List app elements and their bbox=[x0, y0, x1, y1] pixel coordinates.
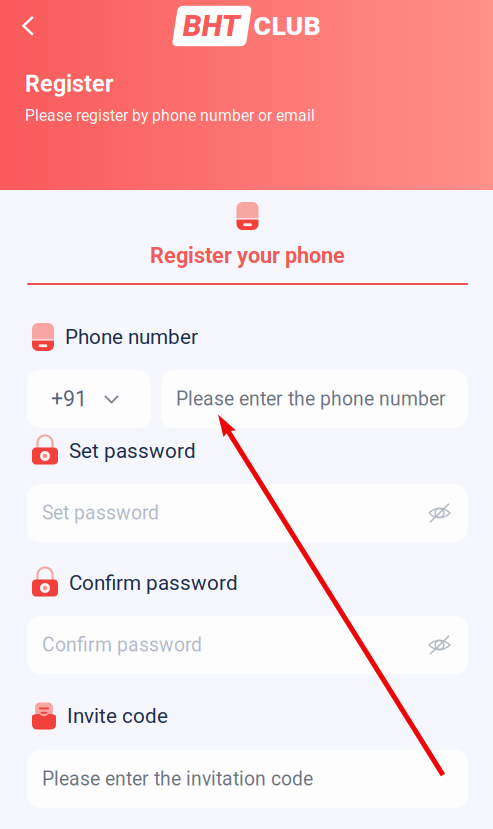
staticText: Set password bbox=[42, 502, 159, 524]
staticText: Please enter the phone number bbox=[176, 388, 446, 410]
button[interactable]: +91 bbox=[27, 370, 151, 428]
button[interactable]: Set password bbox=[27, 484, 468, 542]
button[interactable]: Please enter the phone number bbox=[161, 370, 468, 428]
button[interactable]: Please enter the invitation code bbox=[27, 750, 468, 808]
staticText: CLUB bbox=[253, 10, 320, 42]
button[interactable]: Confirm password bbox=[27, 616, 468, 674]
staticText: Phone number bbox=[65, 325, 198, 349]
staticText: +91 bbox=[51, 386, 87, 411]
staticText: Register bbox=[25, 70, 114, 97]
staticText: Please enter the invitation code bbox=[42, 768, 313, 790]
staticText: Register your phone bbox=[150, 243, 345, 268]
staticText: Confirm password bbox=[42, 634, 202, 656]
button[interactable]: Back bbox=[0, 5, 50, 46]
staticText: Invite code bbox=[67, 704, 168, 728]
staticText: Confirm password bbox=[69, 571, 238, 595]
staticText: Please register by phone number or email bbox=[25, 106, 315, 125]
staticText: BHT bbox=[180, 9, 238, 43]
staticText: Set password bbox=[69, 439, 196, 463]
